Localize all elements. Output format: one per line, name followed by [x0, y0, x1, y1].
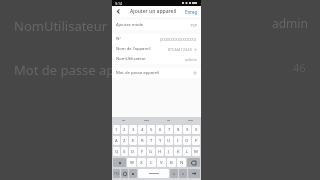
button[interactable]: N [177, 158, 186, 167]
staticText: 46 [293, 60, 306, 75]
button[interactable]: V [157, 158, 166, 167]
staticText: E [132, 138, 135, 144]
button[interactable]: J [165, 147, 173, 156]
button[interactable]: Suggestion 1 [112, 117, 135, 124]
staticText: V [160, 160, 163, 166]
staticText: 3 [132, 127, 135, 133]
button[interactable]: K [174, 147, 182, 156]
button[interactable]: R [138, 136, 146, 145]
staticText: Ajouter un appareil [130, 8, 177, 15]
staticText: Mot de passe appareil [116, 70, 160, 76]
staticText: Z [123, 138, 126, 144]
staticText: B [170, 160, 173, 166]
staticText: 4 [141, 127, 144, 133]
button[interactable]: A [113, 136, 120, 145]
button[interactable]: 9 [183, 125, 191, 134]
button[interactable]: Q [113, 147, 120, 156]
staticText: 2 [123, 127, 126, 133]
button[interactable]: 7 [165, 125, 173, 134]
staticText: 5 [150, 127, 153, 133]
button[interactable]: C [147, 158, 156, 167]
button[interactable]: 0 [192, 125, 200, 134]
button[interactable]: U [165, 136, 173, 145]
staticText: U [167, 138, 171, 144]
staticText: W [130, 160, 134, 166]
staticText: NomUtilisateur [14, 17, 108, 35]
staticText: Nom de l'appareil [116, 46, 151, 52]
button[interactable]: Emoji [121, 169, 128, 178]
button[interactable]: Supprimer [187, 158, 200, 167]
button[interactable]: L [183, 147, 191, 156]
button[interactable]: Paramètres [129, 169, 137, 178]
staticText: X [140, 160, 143, 166]
button[interactable]: Nom de l'appareil [112, 44, 201, 54]
staticText: Q [115, 149, 119, 155]
staticText: NomUtilisateur [116, 56, 146, 62]
staticText: M [194, 149, 198, 155]
button[interactable]: 4 [138, 125, 146, 134]
staticText: N [180, 160, 184, 166]
button[interactable]: P [192, 136, 200, 145]
button[interactable]: 3 [129, 125, 137, 134]
staticText: ?12 [114, 172, 120, 176]
button[interactable]: I [174, 136, 182, 145]
button[interactable]: 8 [174, 125, 182, 134]
button[interactable]: Symboles [113, 169, 120, 178]
staticText: 6 [159, 127, 162, 133]
button[interactable]: 2 [121, 125, 128, 134]
button[interactable]: 6 [156, 125, 164, 134]
button[interactable]: Espace [138, 169, 169, 178]
button[interactable]: X [137, 158, 146, 167]
staticText: K [177, 149, 180, 155]
staticText: G [149, 149, 153, 155]
button[interactable]: D [129, 147, 137, 156]
staticText: Ajoutez mode [116, 22, 144, 28]
staticText: 7 [168, 127, 171, 133]
staticText: JXXXXXXXXXXXXXXX [160, 37, 197, 42]
button[interactable]: Mot de passe appareil [112, 68, 201, 78]
button[interactable]: Retour [112, 6, 124, 17]
staticText: Mot de passe ap [14, 61, 115, 79]
button[interactable]: T [147, 136, 155, 145]
button[interactable]: E [129, 136, 137, 145]
button[interactable]: Suggestion 3 [157, 117, 179, 124]
button[interactable]: Suggestion 2 [135, 117, 157, 124]
button[interactable]: G [147, 147, 155, 156]
staticText: 1 [115, 127, 118, 133]
staticText: R [141, 138, 144, 144]
button[interactable]: F [138, 147, 146, 156]
button[interactable]: Enreg [182, 6, 201, 17]
button[interactable]: Ajoutez mode [112, 20, 201, 30]
button[interactable]: Suggestion 4 [179, 117, 201, 124]
staticText: H [158, 149, 162, 155]
staticText: admin [272, 15, 308, 31]
staticText: IPCAM12345 [168, 47, 192, 52]
button[interactable]: M [192, 147, 200, 156]
button[interactable]: Virgule [179, 169, 187, 178]
staticText: N° [116, 36, 121, 42]
button[interactable]: Z [121, 136, 128, 145]
staticText: P [195, 138, 198, 144]
staticText: F [141, 149, 144, 155]
staticText: T [150, 138, 153, 144]
button[interactable]: Majuscule [113, 158, 126, 167]
staticText: TYP [190, 23, 197, 28]
button[interactable]: 5 [147, 125, 155, 134]
staticText: L [186, 149, 189, 155]
button[interactable]: O [183, 136, 191, 145]
button[interactable]: Entrée [188, 169, 200, 178]
button[interactable]: N° [112, 34, 201, 44]
staticText: O [185, 138, 189, 144]
button[interactable]: NomUtilisateur [112, 54, 201, 64]
button[interactable]: H [156, 147, 164, 156]
staticText: J [168, 149, 170, 155]
button[interactable]: S [121, 147, 128, 156]
staticText: Enreg [185, 9, 198, 15]
button[interactable]: Y [156, 136, 164, 145]
button[interactable]: B [167, 158, 176, 167]
button[interactable]: 1 [113, 125, 120, 134]
staticText: I [177, 138, 179, 144]
button[interactable]: W [127, 158, 136, 167]
staticText: A [115, 138, 118, 144]
button[interactable]: Point [170, 169, 178, 178]
